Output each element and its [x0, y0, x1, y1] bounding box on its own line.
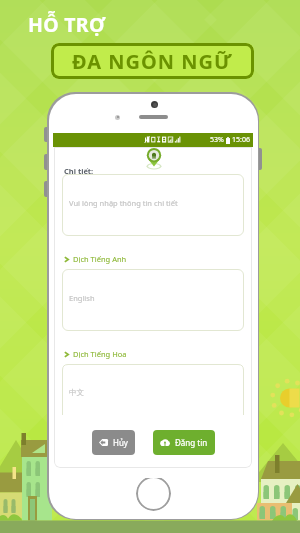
staticText: Chi tiết: — [64, 166, 94, 176]
other: Home — [136, 476, 171, 511]
staticText: 53% — [210, 135, 224, 145]
button[interactable]: Dịch Tiếng Hoa — [63, 349, 127, 359]
staticText: 中文 — [69, 388, 84, 397]
staticText: Đăng tin — [175, 437, 208, 448]
button[interactable]: Dịch Tiếng Anh — [63, 254, 127, 264]
button[interactable]: English — [62, 269, 244, 331]
button[interactable]: Hủy — [92, 430, 135, 455]
staticText: Dịch Tiếng Hoa — [73, 349, 127, 359]
button[interactable]: Đăng tin — [153, 430, 215, 455]
staticText: Dịch Tiếng Anh — [73, 254, 127, 264]
staticText: English — [69, 293, 95, 303]
staticText: Hủy — [113, 437, 128, 448]
button[interactable]: ĐA NGÔN NGỮ — [51, 43, 254, 79]
staticText: 15:06 — [232, 135, 250, 145]
button[interactable]: 中文 — [62, 364, 244, 415]
staticText: HỖ TRỢ — [28, 11, 106, 38]
staticText: ĐA NGÔN NGỮ — [72, 48, 233, 75]
staticText: Vui lòng nhập thông tin chi tiết — [69, 198, 178, 208]
button[interactable]: Vui lòng nhập thông tin chi tiết — [62, 174, 244, 236]
